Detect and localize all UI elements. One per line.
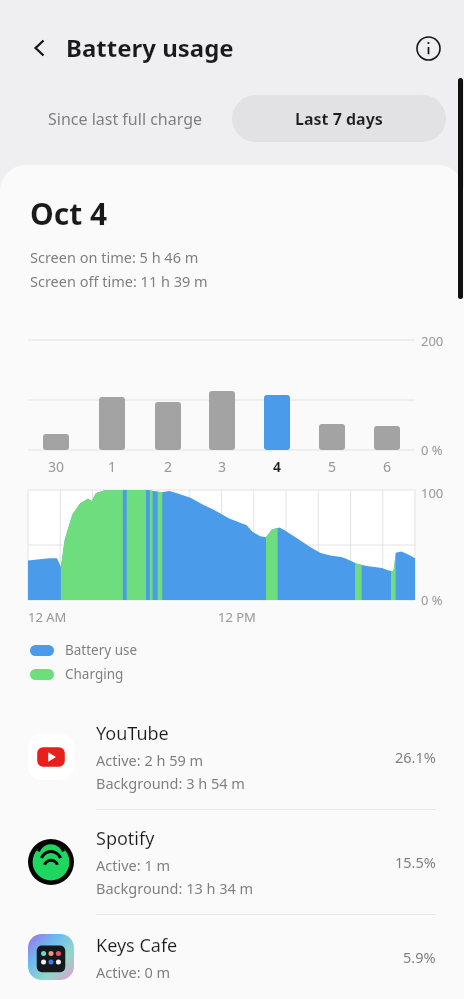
staticText: Spotify bbox=[96, 826, 155, 851]
staticText: 5.9% bbox=[403, 947, 436, 967]
staticText: Active: 2 h 59 m bbox=[96, 750, 204, 770]
staticText: Charging bbox=[65, 665, 124, 683]
button[interactable]: Keys Cafe bbox=[0, 915, 464, 999]
staticText: Background: 3 h 54 m bbox=[96, 773, 245, 793]
staticText: 2 bbox=[148, 457, 188, 476]
staticText: 4 bbox=[257, 457, 297, 476]
button[interactable]: Last 7 days bbox=[232, 95, 446, 142]
staticText: Since last full charge bbox=[48, 108, 203, 130]
button[interactable]: YouTube bbox=[0, 705, 464, 810]
staticText: Active: 0 m bbox=[96, 962, 171, 982]
staticText: Battery usage bbox=[66, 31, 234, 64]
staticText: 3 bbox=[202, 457, 242, 476]
staticText: 26.1% bbox=[395, 747, 436, 767]
staticText: Background: 13 h 34 m bbox=[96, 878, 254, 898]
staticText: Keys Cafe bbox=[96, 933, 178, 958]
staticText: 0 % bbox=[421, 441, 443, 459]
staticText: Battery use bbox=[65, 641, 138, 659]
button[interactable]: Since last full charge bbox=[18, 95, 232, 142]
staticText: Oct 4 bbox=[30, 193, 108, 234]
staticText: Last 7 days bbox=[295, 108, 383, 130]
staticText: 6 bbox=[367, 457, 407, 476]
button[interactable]: Information bbox=[407, 27, 449, 69]
staticText: Screen off time: 11 h 39 m bbox=[30, 271, 208, 291]
staticText: 5 bbox=[312, 457, 352, 476]
staticText: 100 bbox=[421, 484, 444, 502]
staticText: 15.5% bbox=[395, 852, 436, 872]
staticText: 0 % bbox=[421, 591, 443, 609]
staticText: 30 bbox=[36, 457, 76, 476]
staticText: Screen on time: 5 h 46 m bbox=[30, 247, 199, 267]
staticText: YouTube bbox=[96, 721, 169, 746]
button[interactable]: Spotify bbox=[0, 810, 464, 915]
button[interactable]: Back bbox=[18, 26, 62, 70]
staticText: 200 bbox=[421, 332, 444, 350]
staticText: 12 PM bbox=[218, 608, 256, 626]
staticText: 12 AM bbox=[28, 608, 67, 626]
staticText: 1 bbox=[92, 457, 132, 476]
staticText: Active: 1 m bbox=[96, 855, 171, 875]
